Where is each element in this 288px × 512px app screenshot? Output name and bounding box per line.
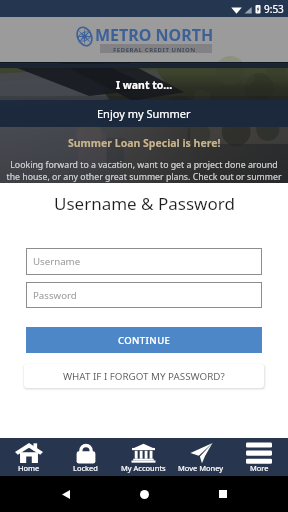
button[interactable]: Enjoy my Summer bbox=[0, 100, 288, 127]
button[interactable]: More bbox=[230, 438, 288, 476]
button[interactable]: Recent apps bbox=[210, 481, 236, 507]
staticText: WHAT IF I FORGOT MY PASSWORD? bbox=[63, 370, 225, 383]
staticText: Looking forward to a vacation, want to g… bbox=[4, 159, 284, 183]
staticText: Summer Loan Special is here! bbox=[68, 136, 221, 150]
button[interactable]: Password bbox=[26, 282, 262, 308]
staticText: Move Money bbox=[178, 463, 224, 473]
staticText: Locked bbox=[73, 463, 98, 473]
staticText: My Accounts bbox=[121, 463, 166, 473]
button[interactable]: CONTINUE bbox=[26, 327, 262, 353]
staticText: Password bbox=[33, 289, 77, 302]
staticText: Home bbox=[18, 463, 40, 473]
button[interactable]: Username bbox=[26, 248, 262, 275]
button[interactable]: Move Money bbox=[172, 438, 230, 476]
staticText: Enjoy my Summer bbox=[97, 106, 191, 121]
button[interactable]: WHAT IF I FORGOT MY PASSWORD? bbox=[24, 364, 264, 388]
button[interactable]: Home bbox=[131, 481, 157, 507]
button[interactable]: Locked bbox=[57, 438, 114, 476]
staticText: Username bbox=[33, 255, 81, 268]
staticText: CONTINUE bbox=[118, 334, 171, 347]
staticText: Username & Password bbox=[54, 192, 235, 215]
staticText: 9:53 bbox=[264, 2, 284, 16]
staticText: METRO NORTH bbox=[95, 24, 214, 46]
staticText: More bbox=[250, 463, 269, 473]
staticText: FEDERAL CREDIT UNION bbox=[113, 46, 196, 54]
button[interactable]: Back bbox=[53, 481, 79, 507]
button[interactable]: Home bbox=[0, 438, 57, 476]
button[interactable]: My Accounts bbox=[114, 438, 172, 476]
staticText: I want to... bbox=[116, 78, 173, 92]
